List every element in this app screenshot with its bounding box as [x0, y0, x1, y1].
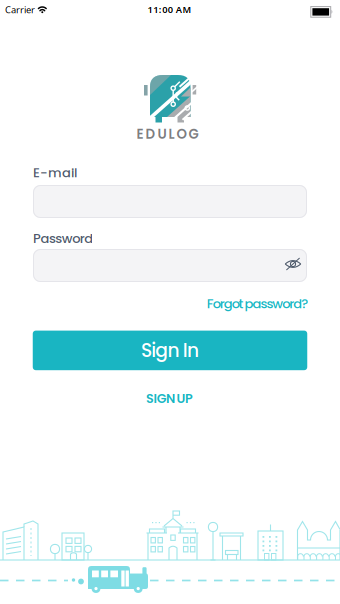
button[interactable]: Forgot password? — [207, 294, 308, 313]
button[interactable]: Sign In — [33, 331, 307, 370]
staticText: EDULOG — [136, 125, 198, 144]
staticText: Sign In — [141, 337, 199, 363]
button[interactable]: SIGN UP — [146, 390, 193, 407]
staticText: Password — [33, 229, 93, 248]
button[interactable]: E-mail — [33, 185, 307, 218]
button[interactable]: Password — [33, 249, 307, 282]
staticText: Forgot password? — [207, 294, 308, 313]
staticText: Carrier — [5, 3, 35, 16]
button[interactable]: Show password — [284, 256, 302, 272]
staticText: 11:00 AM — [148, 3, 191, 16]
staticText: E-mail — [33, 163, 77, 182]
staticText: SIGN UP — [146, 390, 193, 407]
